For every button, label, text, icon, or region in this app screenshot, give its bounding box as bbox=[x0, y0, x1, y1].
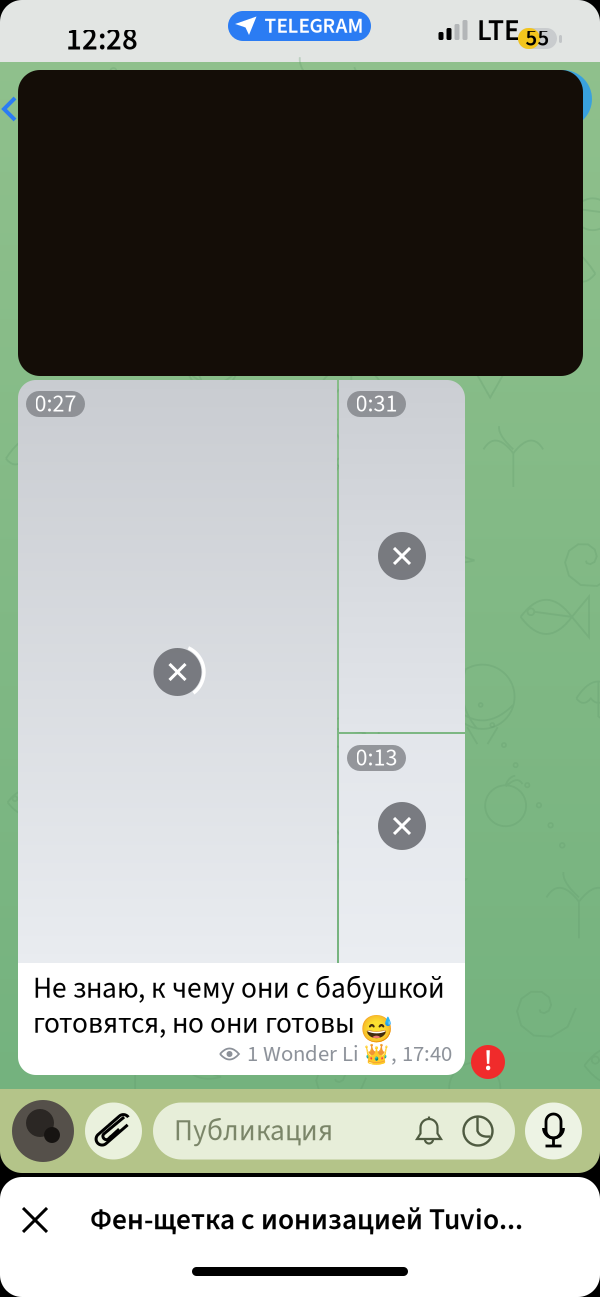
staticText: Не знаю, к чему они с бабушкой bbox=[33, 968, 445, 1009]
button[interactable]: Публикация bbox=[153, 1102, 515, 1159]
staticText: 55 bbox=[525, 22, 549, 55]
staticText: 0:31 bbox=[355, 387, 397, 421]
button[interactable]: Account bbox=[12, 1100, 74, 1162]
button[interactable]: 0:27 bbox=[18, 380, 337, 963]
staticText: Фен-щетка с ионизацией Tuvio... bbox=[90, 1199, 523, 1241]
staticText: 0:13 bbox=[355, 741, 397, 775]
staticText: ! bbox=[483, 1040, 492, 1082]
button[interactable]: Attach bbox=[85, 1102, 142, 1159]
staticText: 12:28 bbox=[66, 18, 138, 62]
staticText: 0:27 bbox=[34, 387, 76, 421]
staticText: 1 Wonder Li bbox=[247, 1038, 359, 1070]
staticText: LTE bbox=[477, 10, 520, 52]
button[interactable]: Close bbox=[0, 1195, 68, 1245]
button[interactable]: 0:31 bbox=[339, 380, 465, 732]
staticText: , 17:40 bbox=[391, 1038, 452, 1070]
button[interactable]: Record voice message bbox=[525, 1102, 582, 1159]
staticText: готовятся, но они готовы bbox=[33, 1003, 355, 1044]
button[interactable]: Message failed to send — retry bbox=[471, 1045, 505, 1079]
button[interactable]: 0:13 bbox=[339, 734, 465, 963]
staticText: 👑 bbox=[364, 1042, 389, 1066]
staticText: 😅 bbox=[360, 1013, 393, 1044]
staticText: TELEGRAM bbox=[264, 11, 363, 41]
staticText: Публикация bbox=[174, 1110, 333, 1152]
